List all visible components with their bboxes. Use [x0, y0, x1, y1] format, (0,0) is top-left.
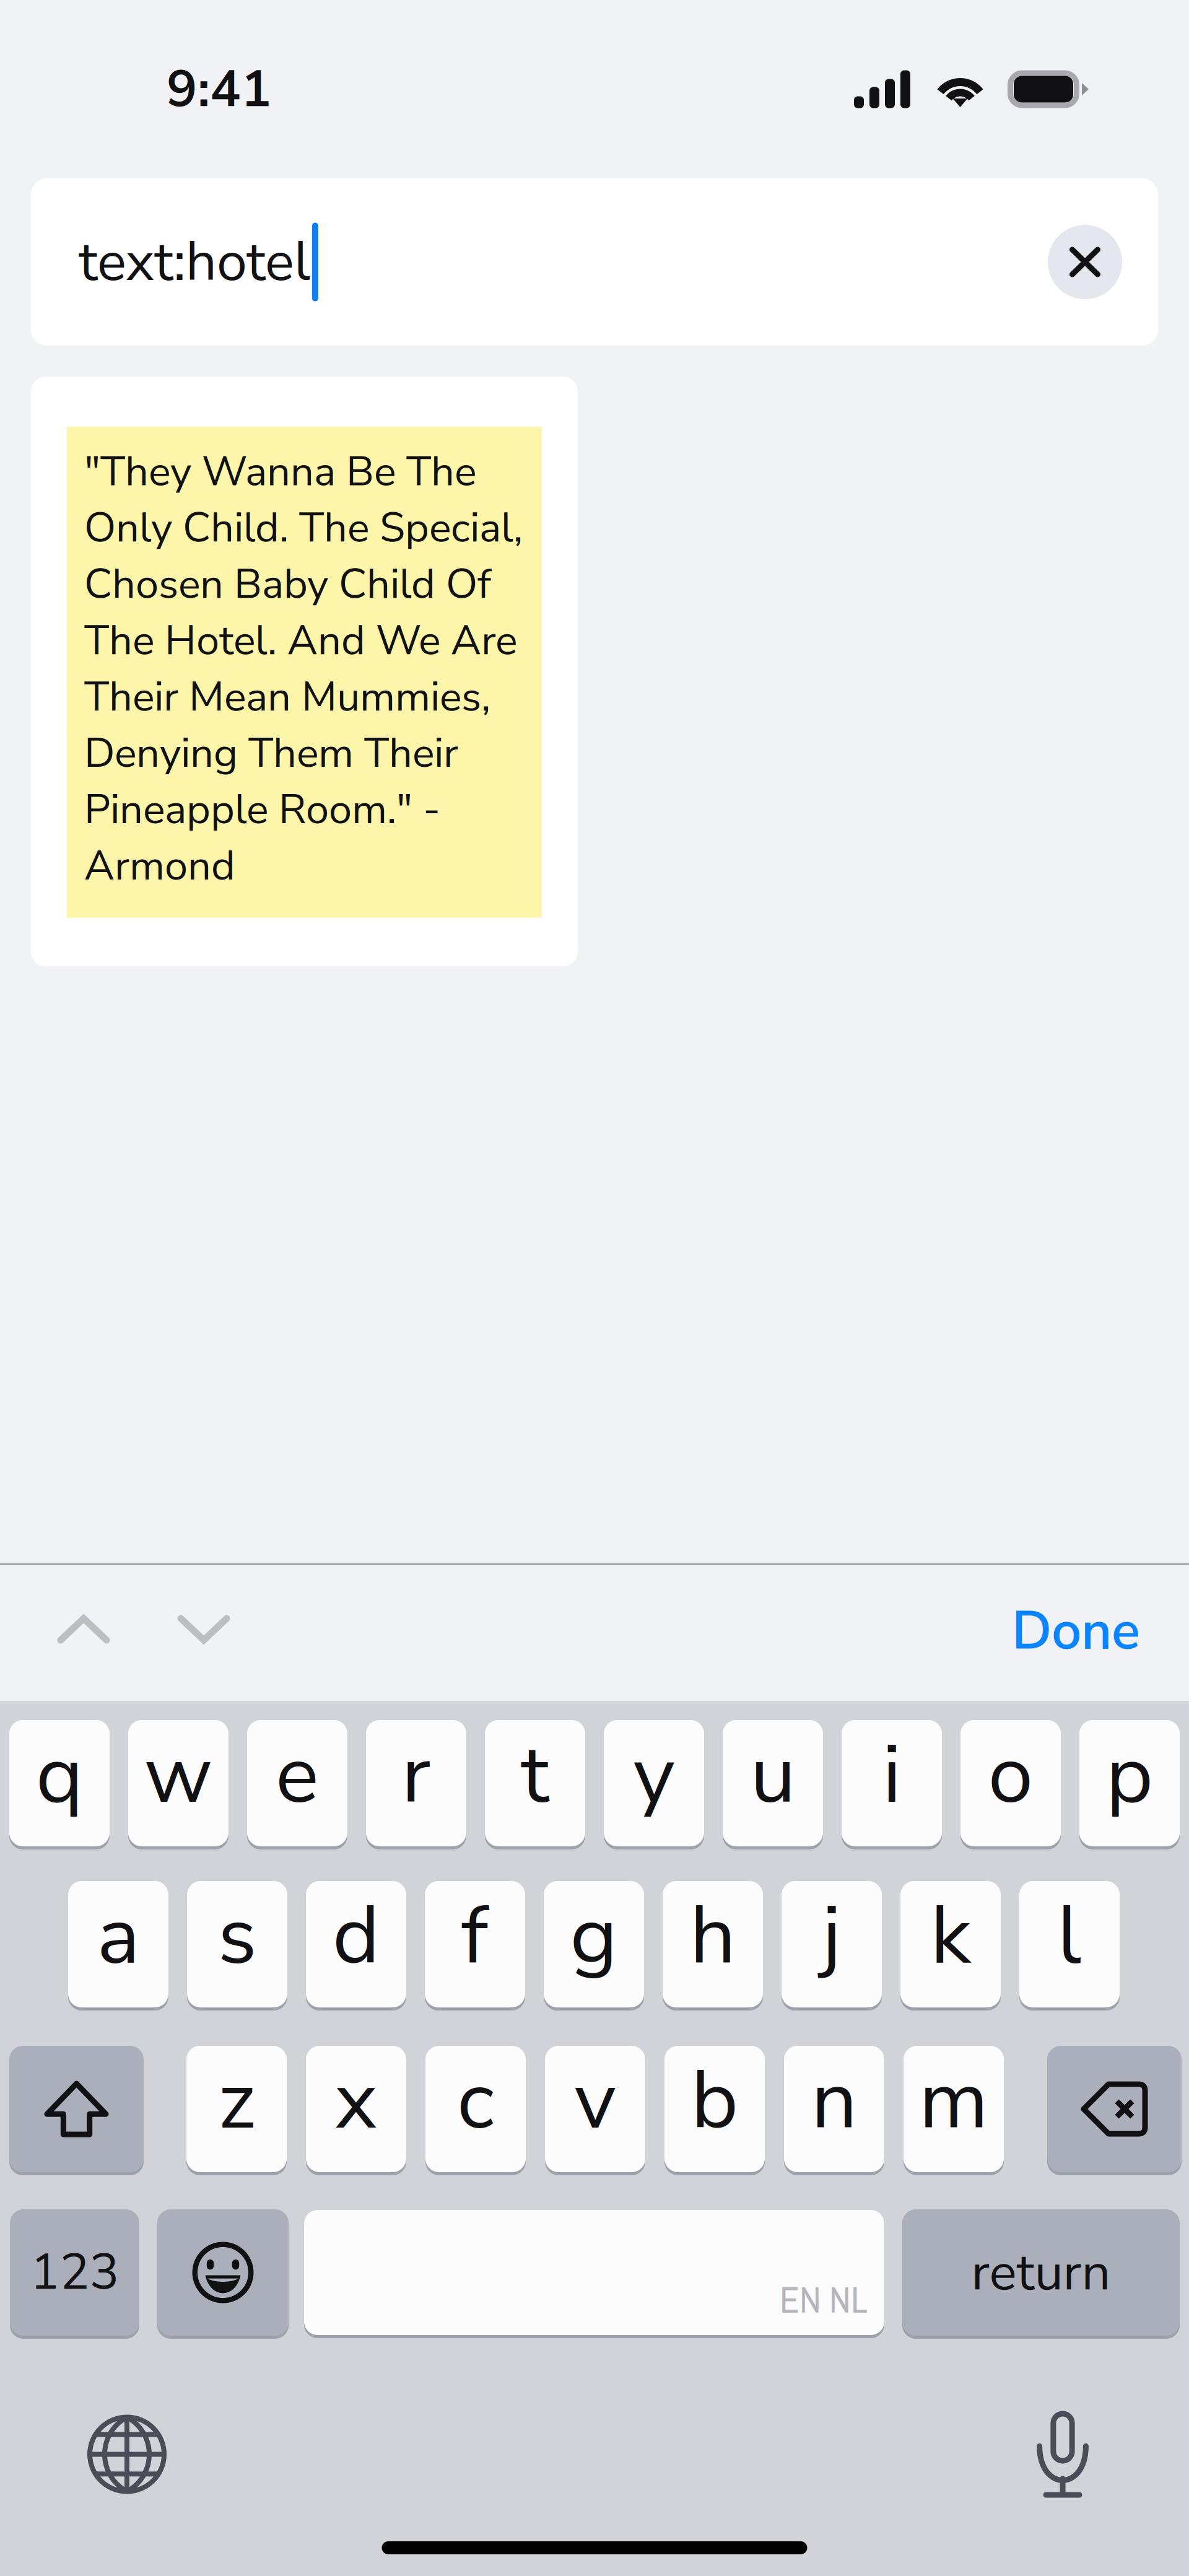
staticText: z — [218, 2046, 255, 2156]
button[interactable]: i — [842, 1720, 942, 1846]
button[interactable]: Delete — [1047, 2046, 1182, 2172]
staticText: q — [36, 1720, 83, 1830]
staticText: y — [633, 1720, 675, 1830]
staticText: "They Wanna Be The Only Child. The Speci… — [84, 443, 523, 894]
staticText: u — [750, 1720, 795, 1830]
staticText: g — [570, 1881, 618, 1991]
staticText: b — [691, 2046, 738, 2156]
button[interactable]: m — [904, 2046, 1004, 2172]
staticText: text:hotel — [79, 225, 310, 299]
staticText: c — [457, 2046, 494, 2156]
staticText: v — [574, 2046, 616, 2156]
button[interactable]: d — [306, 1881, 406, 2007]
button[interactable]: Done — [987, 1582, 1165, 1684]
staticText: j — [822, 1881, 841, 1991]
button[interactable]: l — [1019, 1881, 1120, 2007]
button[interactable]: Clear search — [1048, 225, 1122, 299]
staticText: n — [811, 2046, 857, 2156]
button[interactable]: f — [425, 1881, 525, 2007]
staticText: e — [276, 1720, 319, 1830]
button[interactable]: "They Wanna Be The Only Child. The Speci… — [31, 377, 578, 967]
button[interactable]: j — [782, 1881, 882, 2007]
button[interactable]: w — [128, 1720, 229, 1846]
button[interactable]: y — [604, 1720, 704, 1846]
button[interactable]: space — [304, 2210, 884, 2335]
button[interactable]: Shift — [9, 2046, 144, 2172]
staticText: s — [218, 1881, 257, 1991]
button[interactable]: Dictate — [1024, 2401, 1101, 2507]
button[interactable]: v — [545, 2046, 645, 2172]
staticText: p — [1106, 1720, 1153, 1830]
button[interactable]: u — [723, 1720, 823, 1846]
staticText: Done — [1012, 1595, 1140, 1667]
button[interactable]: h — [663, 1881, 763, 2007]
staticText: h — [690, 1881, 736, 1991]
staticText: o — [988, 1720, 1033, 1830]
staticText: a — [97, 1881, 140, 1991]
button[interactable]: r — [366, 1720, 466, 1846]
staticText: i — [882, 1720, 901, 1830]
staticText: r — [402, 1720, 431, 1830]
staticText: f — [461, 1881, 489, 1991]
button[interactable]: return — [902, 2209, 1180, 2336]
button[interactable]: k — [900, 1881, 1001, 2007]
button[interactable]: c — [425, 2046, 526, 2172]
staticText: d — [333, 1881, 380, 1991]
button[interactable]: x — [306, 2046, 406, 2172]
button[interactable]: o — [960, 1720, 1061, 1846]
staticText: x — [335, 2046, 377, 2156]
staticText: 9:41 — [167, 54, 272, 124]
staticText: 123 — [30, 2239, 119, 2306]
staticText: return — [971, 2238, 1111, 2307]
button[interactable]: t — [485, 1720, 585, 1846]
button[interactable]: Next — [156, 1594, 251, 1672]
button[interactable]: s — [187, 1881, 287, 2007]
button[interactable]: Previous — [36, 1594, 131, 1672]
staticText: k — [930, 1881, 971, 1991]
button[interactable]: n — [784, 2046, 884, 2172]
button[interactable]: Next keyboard — [77, 2404, 177, 2504]
staticText: EN NL — [780, 2275, 868, 2324]
button[interactable]: Emoji — [157, 2209, 289, 2336]
staticText: w — [144, 1720, 212, 1830]
button[interactable]: b — [664, 2046, 765, 2172]
staticText: t — [521, 1720, 549, 1830]
button[interactable]: q — [9, 1720, 110, 1846]
button[interactable]: z — [186, 2046, 287, 2172]
button[interactable]: g — [544, 1881, 644, 2007]
button[interactable]: e — [247, 1720, 347, 1846]
staticText: l — [1057, 1881, 1082, 1991]
button[interactable]: 123 — [10, 2209, 139, 2336]
staticText: m — [919, 2046, 988, 2156]
button[interactable]: a — [68, 1881, 168, 2007]
button[interactable]: p — [1079, 1720, 1180, 1846]
